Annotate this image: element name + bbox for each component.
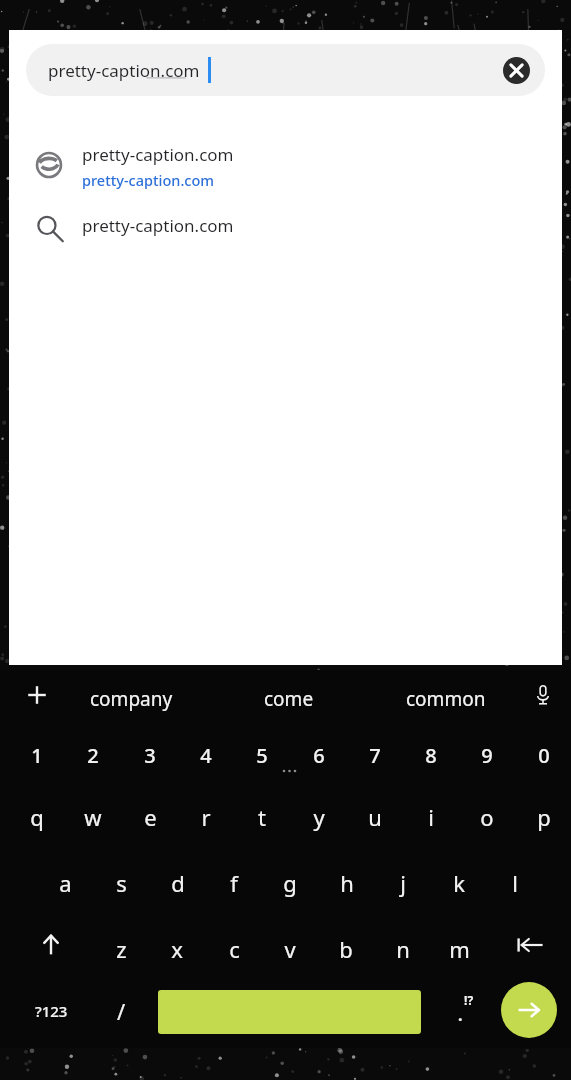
button[interactable]: u	[349, 792, 401, 842]
staticText: .	[458, 1004, 463, 1026]
button[interactable]: r	[180, 792, 232, 842]
staticText: pretty-caption.com	[82, 214, 234, 237]
button[interactable]: 7	[349, 730, 401, 780]
staticText: e	[144, 802, 157, 832]
button[interactable]: t	[236, 792, 288, 842]
staticText: ?123	[35, 1001, 68, 1021]
button[interactable]: o	[461, 792, 513, 842]
staticText: d	[171, 868, 185, 898]
staticText: /	[117, 996, 126, 1026]
button[interactable]: !?	[440, 988, 488, 1034]
staticText: v	[284, 934, 296, 964]
button[interactable]: pretty-caption.com	[26, 44, 545, 96]
button[interactable]: common	[376, 670, 516, 728]
staticText: g	[283, 868, 297, 898]
staticText: 7	[369, 742, 381, 769]
staticText: x	[171, 934, 183, 964]
button[interactable]: 3	[124, 730, 176, 780]
staticText: m	[449, 934, 470, 964]
staticText: !?	[464, 992, 474, 1008]
staticText: u	[368, 802, 382, 832]
button[interactable]: b	[320, 924, 372, 974]
staticText: pretty-caption.com	[48, 59, 200, 82]
staticText: pretty-caption.com	[82, 143, 234, 166]
button[interactable]: Space	[158, 990, 421, 1034]
button[interactable]: e	[124, 792, 176, 842]
button[interactable]: 5	[236, 730, 288, 780]
button[interactable]: j	[377, 858, 429, 908]
button[interactable]: h	[321, 858, 373, 908]
button[interactable]: w	[67, 792, 119, 842]
button[interactable]: 6	[293, 730, 345, 780]
staticText: q	[30, 802, 44, 832]
staticText: 2	[87, 742, 99, 769]
button[interactable]: 8	[405, 730, 457, 780]
staticText: company	[90, 686, 173, 712]
button[interactable]: x	[151, 924, 203, 974]
button[interactable]: d	[152, 858, 204, 908]
button[interactable]: y	[293, 792, 345, 842]
button[interactable]: p	[518, 792, 570, 842]
button[interactable]: 9	[461, 730, 513, 780]
staticText: 5	[256, 742, 268, 769]
staticText: i	[428, 802, 434, 832]
button[interactable]: Clear	[499, 53, 533, 87]
button[interactable]: s	[95, 858, 147, 908]
button[interactable]: Add	[12, 670, 62, 720]
button[interactable]: Voice input	[518, 670, 568, 720]
staticText: c	[229, 934, 240, 964]
staticText: 3	[144, 742, 156, 769]
button[interactable]: ?123	[20, 988, 82, 1034]
button[interactable]: come	[219, 670, 359, 728]
button[interactable]: 4	[180, 730, 232, 780]
staticText: j	[400, 868, 406, 898]
button[interactable]: z	[95, 924, 147, 974]
staticText: o	[480, 802, 494, 832]
button[interactable]: k	[433, 858, 485, 908]
staticText: l	[512, 868, 518, 898]
button[interactable]: l	[489, 858, 541, 908]
button[interactable]: f	[208, 858, 260, 908]
staticText: z	[116, 934, 127, 964]
staticText: n	[396, 934, 410, 964]
staticText: come	[264, 686, 314, 712]
button[interactable]: i	[405, 792, 457, 842]
staticText: pretty-caption.com	[82, 170, 215, 190]
staticText: common	[406, 686, 486, 712]
staticText: h	[340, 868, 354, 898]
button[interactable]: c	[208, 924, 260, 974]
staticText: k	[453, 868, 465, 898]
button[interactable]: 2	[67, 730, 119, 780]
staticText: b	[339, 934, 353, 964]
staticText: s	[116, 868, 127, 898]
staticText: 1	[31, 742, 43, 769]
button[interactable]: q	[11, 792, 63, 842]
staticText: 9	[481, 742, 493, 769]
staticText: w	[84, 802, 102, 832]
button[interactable]: g	[264, 858, 316, 908]
button[interactable]: company	[61, 670, 201, 728]
button[interactable]: m	[433, 924, 485, 974]
button[interactable]: 0	[518, 730, 570, 780]
button[interactable]: n	[377, 924, 429, 974]
button[interactable]: v	[264, 924, 316, 974]
button[interactable]: a	[39, 858, 91, 908]
button[interactable]: /	[98, 988, 144, 1034]
staticText: f	[230, 868, 238, 898]
staticText: t	[258, 802, 266, 832]
button[interactable]: pretty-caption.com	[9, 134, 562, 196]
staticText: r	[201, 802, 211, 832]
staticText: 6	[313, 742, 325, 769]
button[interactable]: Shift	[25, 922, 77, 968]
button[interactable]: Go	[501, 982, 557, 1038]
staticText: 8	[425, 742, 437, 769]
staticText: p	[537, 802, 551, 832]
button[interactable]: pretty-caption.com	[9, 200, 562, 256]
button[interactable]: Backspace	[504, 922, 556, 968]
staticText: y	[313, 802, 325, 832]
staticText: a	[59, 868, 72, 898]
staticText: 4	[200, 742, 212, 769]
button[interactable]: 1	[11, 730, 63, 780]
staticText: 0	[538, 742, 550, 769]
